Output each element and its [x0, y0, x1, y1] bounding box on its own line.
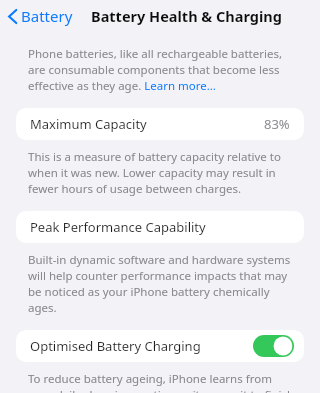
staticText: 83%	[264, 115, 290, 133]
staticText: Peak Performance Capability	[30, 218, 206, 236]
staticText: Battery Health & Charging	[91, 6, 282, 26]
staticText: Maximum Capacity	[30, 115, 147, 133]
staticText: Built-in dynamic software and hardware s…	[28, 252, 298, 316]
button[interactable]: Optimised Battery Charging toggle	[253, 335, 294, 357]
button[interactable]: Battery	[0, 2, 79, 30]
staticText: Optimised Battery Charging	[30, 337, 201, 355]
button[interactable]: Optimised Battery Charging	[16, 330, 304, 362]
staticText: This is a measure of battery capacity re…	[28, 149, 298, 197]
staticText: To reduce battery ageing, iPhone learns …	[28, 371, 298, 393]
staticText: Phone batteries, like all rechargeable b…	[28, 46, 298, 94]
staticText: Battery	[21, 6, 73, 26]
button[interactable]: Maximum Capacity	[16, 108, 304, 140]
button[interactable]: Peak Performance Capability	[16, 211, 304, 243]
